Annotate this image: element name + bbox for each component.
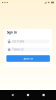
- staticText: Password: [12, 48, 24, 51]
- staticText: Sign In: [7, 31, 17, 34]
- button[interactable]: Recents: [40, 92, 47, 98]
- button[interactable]: SIGN IN: [6, 55, 50, 62]
- button[interactable]: Back: [9, 92, 15, 98]
- button[interactable]: Home: [25, 92, 31, 98]
- staticText: Username: [12, 40, 25, 43]
- staticText: SIGN IN: [23, 57, 33, 60]
